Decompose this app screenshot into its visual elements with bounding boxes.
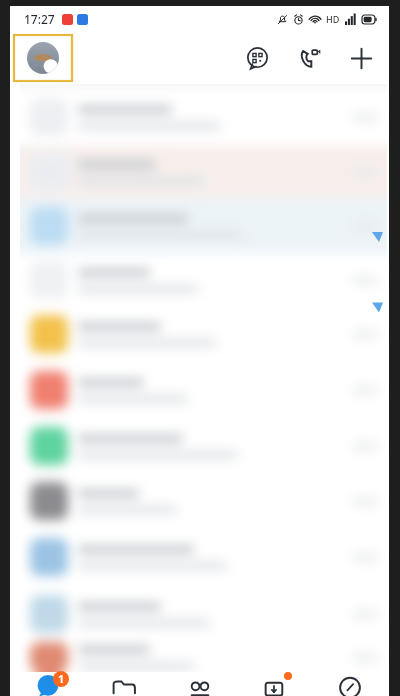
button[interactable]	[20, 474, 387, 528]
button[interactable]	[20, 198, 387, 254]
button[interactable]	[20, 362, 387, 418]
staticText: 1	[58, 672, 64, 686]
staticText: HD	[326, 13, 340, 25]
button[interactable]	[20, 528, 387, 586]
button[interactable]	[20, 254, 387, 306]
button[interactable]: Discover	[314, 672, 386, 696]
button[interactable]	[20, 642, 387, 672]
button[interactable]: Workbench	[239, 672, 311, 696]
button[interactable]	[20, 586, 387, 642]
button[interactable]	[20, 306, 387, 362]
button[interactable]	[20, 418, 387, 474]
button[interactable]	[20, 146, 387, 198]
button[interactable]: Profile	[14, 35, 72, 81]
button[interactable]: Add	[345, 42, 377, 74]
button[interactable]: Files	[88, 672, 160, 696]
button[interactable]: Chats	[13, 672, 85, 696]
button[interactable]: Scan QR code	[241, 42, 273, 74]
staticText: 17:27	[24, 11, 55, 27]
button[interactable]: Video call	[293, 42, 325, 74]
button[interactable]	[20, 88, 387, 146]
button[interactable]: Contacts	[164, 672, 236, 696]
